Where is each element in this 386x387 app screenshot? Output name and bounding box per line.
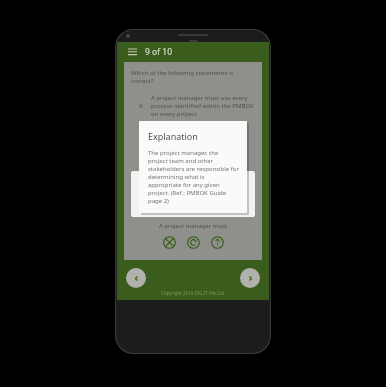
staticText: 9 of 10	[145, 46, 173, 58]
button[interactable]: Show help	[211, 236, 224, 249]
button[interactable]: Reset question	[187, 236, 200, 249]
button[interactable]: Next question	[240, 268, 260, 288]
button[interactable]: Open navigation menu	[125, 45, 139, 59]
staticText: The project manager, the project team an…	[148, 149, 239, 205]
button[interactable]	[131, 171, 255, 217]
staticText: A	[139, 102, 143, 110]
staticText: A project manager must use every process…	[151, 94, 255, 118]
button[interactable]: Previous question	[126, 268, 146, 288]
button[interactable]: Close question	[163, 236, 176, 249]
button[interactable]: A	[131, 94, 255, 118]
staticText: Which of the following statements is cor…	[131, 69, 255, 85]
staticText: A project manager must	[131, 222, 255, 230]
staticText: Copyright 2018 DIG IT Pte Ltd.	[117, 290, 269, 296]
staticText: Explanation	[148, 130, 198, 142]
